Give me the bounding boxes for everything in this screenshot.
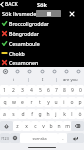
button[interactable]: x — [22, 121, 31, 131]
button[interactable]: a — [0, 109, 9, 119]
staticText: f — [31, 111, 33, 118]
button[interactable]: z — [13, 121, 22, 131]
button[interactable]: n — [55, 121, 63, 131]
staticText: t — [39, 99, 41, 106]
button[interactable]: Tool 6 — [76, 69, 81, 74]
button[interactable]: p — [76, 97, 84, 107]
staticText: z — [16, 123, 19, 130]
button[interactable]: 6 — [44, 85, 52, 95]
staticText: v — [42, 123, 45, 130]
staticText: are you — [63, 77, 78, 83]
button[interactable]: ö — [76, 109, 84, 119]
button[interactable]: 8 — [60, 85, 68, 95]
button[interactable]: y — [44, 97, 52, 107]
button[interactable]: d — [18, 109, 27, 119]
button[interactable]: BACK — [0, 1, 20, 8]
button[interactable]: 1 — [0, 85, 9, 95]
button[interactable]: r — [27, 97, 36, 107]
staticText: x — [25, 123, 28, 130]
button[interactable]: svenska — [20, 133, 58, 143]
staticText: 4 — [30, 87, 33, 94]
button[interactable]: shift — [0, 121, 13, 131]
staticText: q — [3, 99, 7, 106]
staticText: g — [38, 111, 42, 118]
staticText: r — [30, 99, 33, 106]
button[interactable]: backspace — [71, 121, 84, 131]
button[interactable]: Cesamonen — [0, 58, 84, 67]
staticText: e — [21, 99, 24, 106]
staticText: . — [62, 135, 64, 142]
staticText: i — [63, 99, 65, 106]
button[interactable]: Cesamboule — [0, 38, 84, 48]
button[interactable]: Gboard — [3, 69, 8, 74]
staticText: y — [47, 99, 50, 106]
button[interactable]: 9 — [68, 85, 76, 95]
button[interactable]: i — [60, 97, 68, 107]
staticText: Cesamonen — [9, 59, 39, 66]
staticText: c — [34, 123, 37, 130]
button[interactable]: . — [58, 133, 67, 143]
staticText: d — [21, 111, 25, 118]
button[interactable]: enter — [67, 133, 84, 143]
staticText: 2 — [12, 87, 15, 94]
button[interactable]: c — [31, 121, 39, 131]
button[interactable]: Tool 3 — [40, 69, 45, 74]
staticText: w — [12, 99, 16, 106]
button[interactable]: u — [52, 97, 60, 107]
button[interactable]: e — [18, 97, 27, 107]
staticText: svenska — [32, 136, 47, 141]
staticText: u — [54, 99, 58, 106]
button[interactable]: k — [60, 109, 68, 119]
staticText: 7 — [55, 87, 58, 94]
button[interactable]: t — [36, 97, 44, 107]
staticText: Böngroddar — [9, 30, 39, 37]
staticText: m — [65, 123, 70, 130]
button[interactable]: w — [9, 97, 18, 107]
button[interactable]: Tool 4 — [52, 69, 57, 74]
staticText: 5 — [39, 87, 42, 94]
button[interactable]: l — [68, 109, 76, 119]
staticText: Sök livsmedel — [2, 10, 38, 17]
button[interactable]: 5 — [36, 85, 44, 95]
button[interactable]: Tool 1 — [15, 69, 20, 74]
staticText: Cesamboule — [9, 40, 40, 47]
button[interactable]: f — [27, 109, 36, 119]
button[interactable]: Chokb — [0, 48, 84, 58]
button[interactable]: m — [63, 121, 71, 131]
button[interactable]: 7 — [52, 85, 60, 95]
staticText: Broccoligroddar — [9, 20, 49, 27]
button[interactable]: 3 — [18, 85, 27, 95]
button[interactable]: 4 — [27, 85, 36, 95]
button[interactable]: o — [68, 97, 76, 107]
button[interactable]: Broccoligroddar — [0, 18, 84, 28]
button[interactable]: 0 — [76, 85, 84, 95]
button[interactable]: i — [0, 75, 28, 84]
button[interactable]: Clear — [68, 10, 76, 18]
staticText: o — [70, 99, 74, 106]
button[interactable]: Böngroddar — [0, 28, 84, 38]
button[interactable]: Tool 2 — [27, 69, 32, 74]
button[interactable]: emoji — [10, 133, 20, 143]
button[interactable] — [36, 10, 61, 17]
button[interactable]: 2 — [9, 85, 18, 95]
staticText: i — [13, 77, 15, 83]
staticText: 6 — [47, 87, 50, 94]
staticText: a — [3, 111, 6, 118]
button[interactable]: h — [44, 109, 52, 119]
staticText: h — [46, 111, 50, 118]
staticText: 1 — [3, 87, 6, 94]
button[interactable]: ?123 — [0, 133, 10, 143]
button[interactable]: s — [9, 109, 18, 119]
button[interactable]: b — [47, 121, 55, 131]
staticText: 8 — [63, 87, 66, 94]
button[interactable]: I — [29, 75, 56, 84]
button[interactable]: Tool 5 — [64, 69, 69, 74]
button[interactable]: v — [39, 121, 47, 131]
button[interactable]: j — [52, 109, 60, 119]
button[interactable]: q — [0, 97, 9, 107]
staticText: 3 — [21, 87, 24, 94]
button[interactable]: are you — [57, 75, 84, 84]
staticText: n — [57, 123, 61, 130]
staticText: p — [78, 99, 82, 106]
button[interactable]: g — [36, 109, 44, 119]
